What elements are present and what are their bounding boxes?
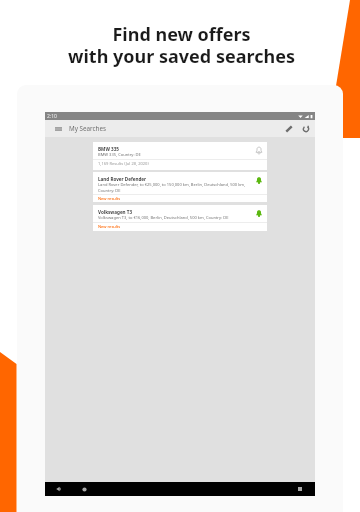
button[interactable]: Edit [281, 120, 297, 137]
button[interactable]: Back [51, 482, 65, 496]
button[interactable]: Volkswagen T3 [93, 205, 267, 231]
button[interactable]: Notifications [255, 176, 263, 185]
staticText: Volkswagen T3, to €16,000, Berlin, Deuts… [98, 215, 229, 221]
staticText: Land Rover Defender, to €25,000, to 150,… [98, 182, 246, 188]
staticText: 1,169 Results (Jul 28, 2020) [98, 161, 149, 167]
staticText: 2:10 [47, 113, 57, 120]
staticText: Land Rover Defender [98, 176, 147, 182]
button[interactable]: Land Rover Defender [93, 172, 267, 202]
staticText: Volkswagen T3 [98, 209, 133, 215]
button[interactable]: Home [77, 482, 91, 496]
button[interactable]: Refresh [297, 120, 315, 137]
staticText: BMW 335, Country: DE [98, 152, 141, 158]
staticText: New results [98, 224, 121, 230]
button[interactable]: Notifications [255, 146, 263, 155]
button[interactable]: Recent apps [293, 482, 307, 496]
staticText: New results [98, 196, 121, 202]
staticText: Find new offers with your saved searches [68, 22, 295, 69]
button[interactable]: Notifications [255, 209, 263, 218]
button[interactable]: BMW 335 [93, 142, 267, 170]
staticText: My Searches [69, 124, 107, 133]
staticText: Country: DE [98, 188, 121, 194]
staticText: BMW 335 [98, 146, 119, 152]
button[interactable]: Menu [50, 120, 66, 137]
